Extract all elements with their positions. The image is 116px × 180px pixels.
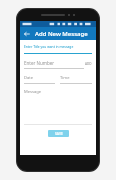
staticText: Enter Number — [24, 60, 55, 66]
button[interactable]: Enter Title you want in message — [24, 44, 92, 54]
staticText: Add New Message — [35, 30, 88, 38]
button[interactable]: Date — [24, 75, 55, 84]
button[interactable]: Time — [60, 75, 92, 84]
button[interactable]: Enter Number — [24, 60, 92, 69]
staticText: Time — [60, 75, 70, 81]
button[interactable]: SAVE — [48, 130, 69, 137]
staticText: ADD — [85, 62, 92, 66]
staticText: Enter Title you want in message — [24, 44, 74, 48]
button[interactable]: Message — [24, 89, 92, 124]
staticText: Message — [24, 89, 42, 95]
staticText: Date — [24, 75, 34, 81]
button[interactable]: Back — [22, 29, 32, 39]
staticText: SAVE — [55, 131, 63, 136]
